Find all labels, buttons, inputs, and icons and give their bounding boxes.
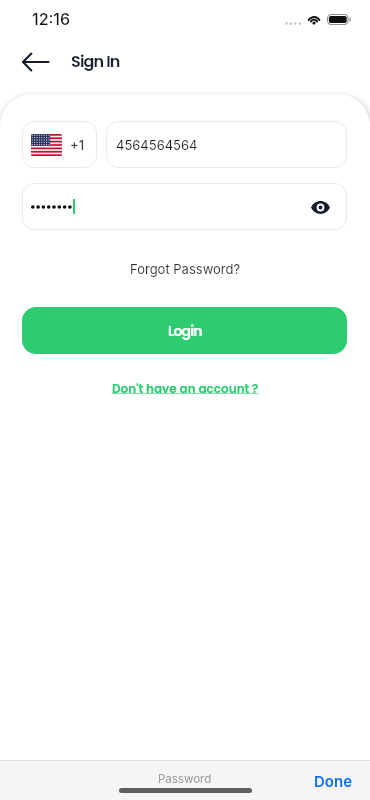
staticText: Sign In (71, 50, 120, 72)
staticText: 4564564564 (116, 137, 198, 153)
button[interactable]: Back (14, 45, 57, 79)
staticText: Login (168, 321, 202, 341)
staticText: Don't have an account ? (112, 380, 259, 397)
staticText: Password (158, 772, 212, 786)
button[interactable]: Forgot Password? (124, 258, 247, 280)
staticText: 12:16 (32, 9, 71, 28)
button[interactable]: +1 (22, 121, 97, 168)
button[interactable]: 4564564564 (106, 121, 347, 168)
button[interactable]: Don't have an account ? (106, 377, 265, 400)
staticText: Done (314, 772, 353, 790)
staticText: +1 (70, 137, 85, 153)
staticText: Forgot Password? (130, 261, 241, 277)
button[interactable]: Login (22, 307, 347, 354)
button[interactable]: Show password (22, 183, 347, 230)
button[interactable]: Done (309, 770, 358, 792)
button[interactable]: Show password (304, 191, 336, 223)
